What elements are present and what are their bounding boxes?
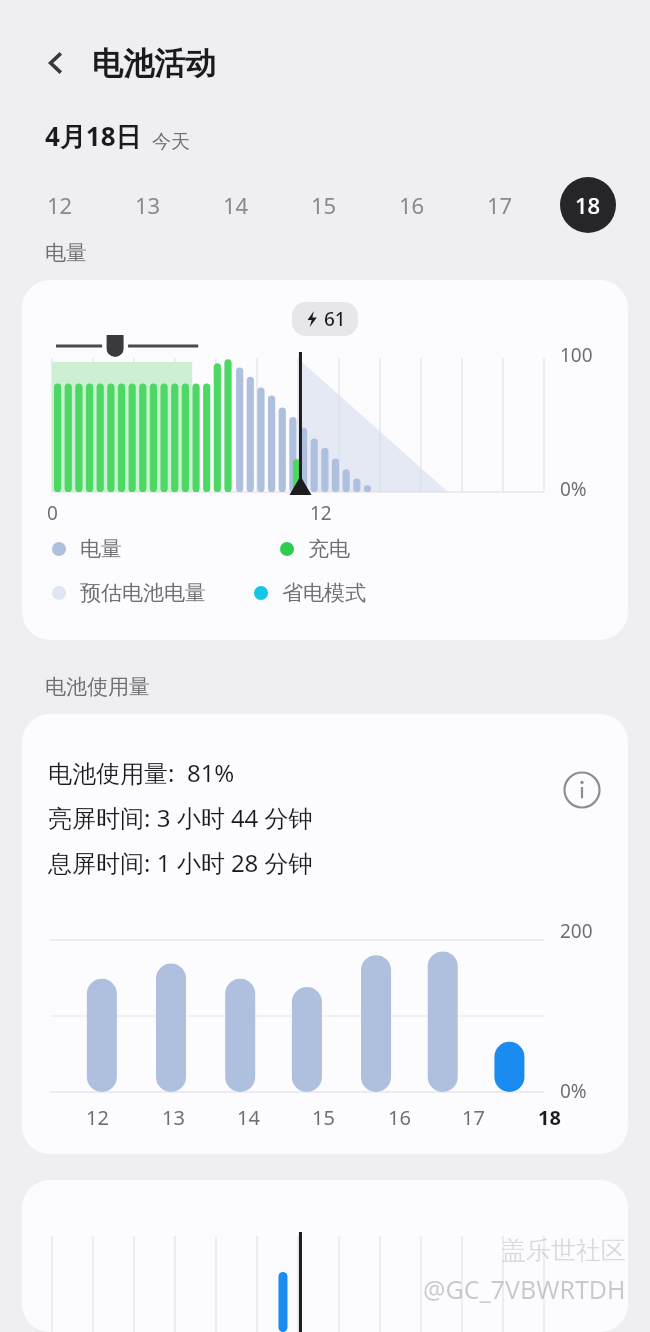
staticText: 亮屏时间: 3 小时 44 分钟 bbox=[48, 801, 313, 834]
staticText: 充电 bbox=[308, 536, 350, 562]
staticText: 预估电池电量 bbox=[80, 580, 206, 606]
staticText: 16 bbox=[399, 190, 425, 220]
staticText: 盖乐世社区 bbox=[501, 1235, 626, 1266]
staticText: 0% bbox=[560, 1078, 587, 1104]
staticText: @GC_7VBWRTDH bbox=[423, 1272, 626, 1306]
button[interactable]: 12 bbox=[32, 177, 88, 233]
staticText: 15 bbox=[311, 190, 337, 220]
staticText: 14 bbox=[223, 190, 249, 220]
button[interactable] bbox=[22, 1180, 628, 1332]
button[interactable]: 15 bbox=[296, 177, 352, 233]
staticText: 13 bbox=[162, 1104, 185, 1131]
staticText: 100 bbox=[560, 342, 593, 368]
button[interactable]: 电池使用量: 81% bbox=[22, 714, 628, 1154]
staticText: 电量 bbox=[80, 536, 122, 562]
staticText: 12 bbox=[47, 190, 73, 220]
button[interactable]: 16 bbox=[384, 177, 440, 233]
staticText: 4月18日 bbox=[45, 118, 142, 154]
staticText: 息屏时间: 1 小时 28 分钟 bbox=[48, 846, 313, 879]
staticText: 17 bbox=[462, 1104, 485, 1131]
staticText: 18 bbox=[575, 190, 601, 220]
staticText: 电量 bbox=[45, 240, 87, 266]
staticText: 12 bbox=[86, 1104, 109, 1131]
staticText: 0 bbox=[47, 500, 58, 526]
button[interactable]: 61 bbox=[22, 280, 628, 640]
staticText: 18 bbox=[538, 1104, 561, 1131]
staticText: 16 bbox=[388, 1104, 411, 1131]
staticText: 17 bbox=[487, 190, 513, 220]
staticText: 省电模式 bbox=[282, 580, 366, 606]
staticText: 电池使用量 bbox=[45, 674, 150, 700]
button[interactable]: 13 bbox=[120, 177, 176, 233]
staticText: 12 bbox=[310, 500, 332, 526]
staticText: 电池使用量: 81% bbox=[48, 756, 235, 789]
button[interactable]: Information bbox=[558, 766, 606, 814]
staticText: 14 bbox=[237, 1104, 260, 1131]
staticText: 15 bbox=[312, 1104, 335, 1131]
staticText: 13 bbox=[135, 190, 161, 220]
button[interactable]: 18 bbox=[560, 177, 616, 233]
button[interactable]: 14 bbox=[208, 177, 264, 233]
staticText: 电池活动 bbox=[92, 44, 216, 83]
staticText: 61 bbox=[324, 306, 346, 332]
button[interactable]: 17 bbox=[472, 177, 528, 233]
staticText: 200 bbox=[560, 918, 593, 944]
staticText: 今天 bbox=[152, 130, 190, 154]
button[interactable]: Back bbox=[36, 43, 76, 83]
staticText: 0% bbox=[560, 476, 587, 502]
